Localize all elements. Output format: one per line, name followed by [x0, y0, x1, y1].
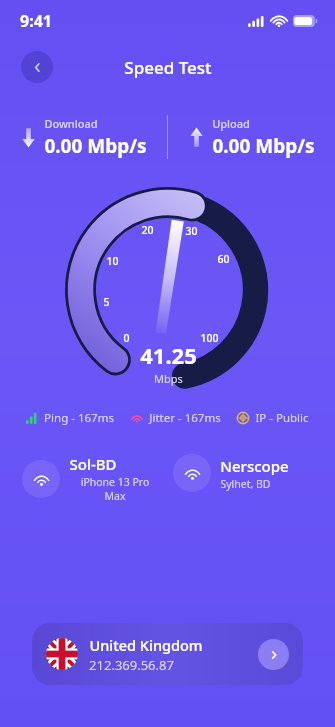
button[interactable]: Back: [21, 51, 53, 83]
staticText: Ping - 167ms: [44, 410, 114, 426]
button[interactable]: Upload: [189, 116, 315, 159]
staticText: IP - Public: [255, 410, 309, 426]
button[interactable]: View details: [258, 639, 289, 670]
staticText: 9:41: [20, 10, 52, 32]
staticText: 0.00 Mbp/s: [44, 133, 147, 159]
staticText: Sol-BD: [69, 454, 117, 474]
staticText: 0: [123, 331, 130, 345]
staticText: United Kingdom: [89, 635, 203, 655]
staticText: 100: [200, 331, 219, 345]
button[interactable]: Nerscope: [173, 450, 313, 496]
staticText: 20: [141, 223, 154, 237]
staticText: 0.00 Mbp/s: [212, 133, 315, 159]
staticText: Mbps: [154, 371, 183, 386]
staticText: Jitter - 167ms: [149, 410, 221, 426]
staticText: Download: [44, 116, 98, 131]
staticText: Upload: [212, 116, 250, 131]
button[interactable]: IP - Public: [237, 410, 309, 426]
button[interactable]: Ping - 167ms: [26, 410, 114, 426]
staticText: Nerscope: [220, 456, 289, 476]
button[interactable]: Jitter - 167ms: [131, 410, 221, 426]
staticText: iPhone 13 Pro Max: [69, 475, 161, 503]
staticText: 30: [185, 224, 198, 238]
staticText: 60: [217, 252, 230, 266]
staticText: 212.369.56.87: [89, 656, 174, 674]
staticText: Sylhet, BD: [220, 477, 271, 491]
button[interactable]: Sol-BD: [22, 450, 161, 507]
button[interactable]: United Kingdom: [32, 623, 303, 685]
staticText: Speed Test: [124, 56, 212, 79]
button[interactable]: Download: [21, 116, 147, 159]
staticText: 5: [103, 295, 110, 309]
staticText: 41.25: [140, 340, 197, 370]
staticText: 10: [106, 254, 119, 268]
